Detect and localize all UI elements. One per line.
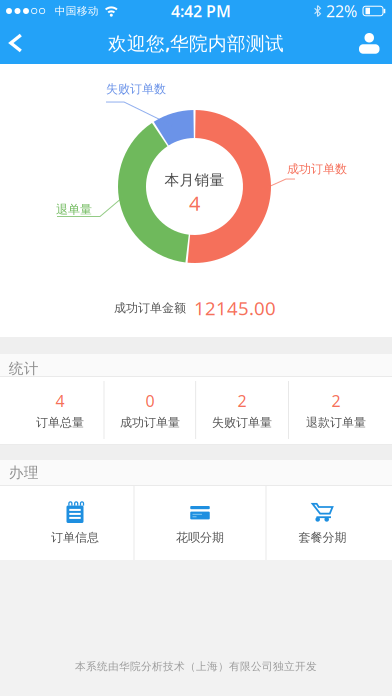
button[interactable]: 套餐分期 (266, 486, 392, 560)
staticText: 2 (331, 390, 340, 411)
staticText: 4 (189, 190, 200, 216)
staticText: 22% (326, 0, 357, 22)
staticText: 0 (145, 390, 154, 411)
button[interactable]: Back (0, 22, 23, 64)
button[interactable]: 订单信息 (0, 486, 134, 560)
staticText: 4:42 PM (171, 0, 231, 22)
staticText: 统计 (9, 359, 39, 377)
staticText: 退单量 (56, 202, 92, 217)
staticText: 本系统由华院分析技术（上海）有限公司独立开发 (75, 660, 317, 673)
staticText: 12145.00 (194, 296, 276, 320)
button[interactable]: 花呗分期 (134, 486, 266, 560)
staticText: 退款订单量 (306, 415, 366, 430)
staticText: 订单总量 (36, 415, 84, 430)
staticText: 花呗分期 (176, 530, 224, 545)
staticText: 中国移动 (55, 4, 99, 17)
staticText: 本月销量 (164, 171, 224, 189)
staticText: 4 (55, 390, 64, 411)
staticText: 成功订单金额 (114, 301, 186, 315)
staticText: 套餐分期 (298, 530, 346, 545)
staticText: 欢迎您,华院内部测试 (108, 31, 284, 55)
staticText: 成功订单数 (287, 162, 347, 176)
staticText: 失败订单数 (106, 82, 166, 96)
staticText: 2 (237, 390, 246, 411)
staticText: 成功订单量 (120, 415, 180, 430)
button[interactable]: Account (359, 22, 392, 64)
staticText: 办理 (9, 463, 39, 481)
staticText: 订单信息 (51, 530, 99, 545)
staticText: 失败订单量 (212, 415, 272, 430)
